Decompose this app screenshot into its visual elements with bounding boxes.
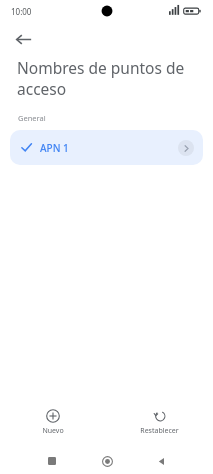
staticText: 10:00 (11, 6, 32, 17)
button[interactable]: Restablecer (106, 402, 213, 442)
button[interactable]: Back (149, 449, 173, 473)
staticText: Nombres de puntos de (17, 57, 185, 78)
staticText: APN 1 (40, 141, 69, 155)
button[interactable]: Recent apps (40, 449, 64, 473)
button[interactable]: Edit APN 1 (178, 140, 194, 156)
button[interactable]: APN 1 (10, 130, 203, 165)
staticText: acceso (17, 78, 67, 99)
staticText: Restablecer (140, 426, 179, 436)
button[interactable]: Nuevo (0, 402, 106, 442)
staticText: General (18, 113, 46, 123)
button[interactable]: Home (95, 449, 119, 473)
staticText: Nuevo (42, 426, 64, 436)
button[interactable]: Back (8, 24, 38, 54)
